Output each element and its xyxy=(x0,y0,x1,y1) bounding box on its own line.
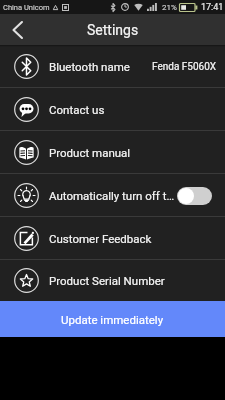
staticText: Customer Feedback xyxy=(49,232,152,245)
staticText: Product manual xyxy=(49,146,131,159)
button[interactable]: Update immediately xyxy=(0,301,225,337)
button[interactable]: Automatically turn off t… xyxy=(0,174,225,217)
button[interactable]: Automatically turn off toggle xyxy=(177,187,212,205)
button[interactable]: Product Serial Number xyxy=(0,260,225,301)
staticText: Settings xyxy=(87,22,139,38)
staticText: Product Serial Number xyxy=(49,274,165,287)
staticText: 17:41 xyxy=(201,2,224,13)
staticText: Fenda F5060X xyxy=(152,61,217,73)
button[interactable]: Contact us xyxy=(0,88,225,131)
button[interactable]: Back xyxy=(0,14,35,45)
button[interactable]: Bluetooth name xyxy=(0,45,225,88)
staticText: Automatically turn off t… xyxy=(49,189,175,202)
staticText: Update immediately xyxy=(61,313,164,326)
staticText: Contact us xyxy=(49,103,105,116)
button[interactable]: Product manual xyxy=(0,131,225,174)
staticText: Bluetooth name xyxy=(49,60,130,73)
staticText: 21% xyxy=(162,3,177,12)
staticText: China Unicom xyxy=(3,3,50,12)
button[interactable]: Customer Feedback xyxy=(0,217,225,260)
